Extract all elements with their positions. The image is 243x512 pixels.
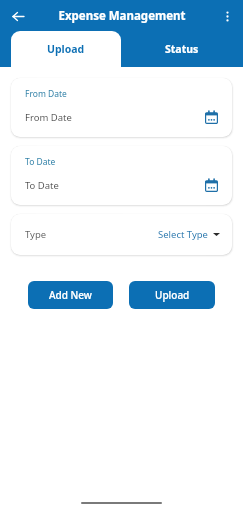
staticText: To Date bbox=[25, 179, 202, 192]
staticText: Upload bbox=[155, 288, 190, 302]
button[interactable]: Upload bbox=[11, 31, 121, 67]
button[interactable]: Back bbox=[7, 5, 29, 27]
staticText: Upload bbox=[47, 42, 85, 56]
staticText: To Date bbox=[25, 156, 56, 168]
button[interactable]: Upload bbox=[129, 281, 215, 309]
button[interactable]: Pick date bbox=[202, 108, 220, 126]
staticText: Status bbox=[165, 42, 199, 56]
staticText: Expense Management bbox=[58, 8, 186, 24]
staticText: From Date bbox=[25, 88, 67, 100]
button[interactable]: Pick date bbox=[202, 176, 220, 194]
button[interactable]: Type bbox=[11, 214, 232, 255]
staticText: From Date bbox=[25, 111, 202, 124]
button[interactable]: Add New bbox=[28, 281, 113, 309]
button[interactable]: From Date bbox=[11, 78, 232, 137]
staticText: Add New bbox=[49, 288, 92, 302]
staticText: Type bbox=[25, 228, 158, 241]
button[interactable]: Status bbox=[121, 31, 243, 67]
button[interactable]: To Date bbox=[11, 146, 232, 205]
staticText: Select Type bbox=[158, 228, 208, 241]
button[interactable]: More options bbox=[216, 5, 238, 27]
